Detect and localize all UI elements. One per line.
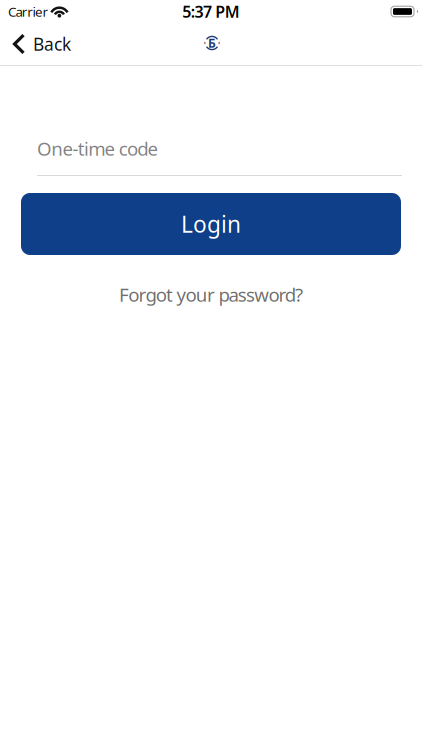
button[interactable]: One-time code	[0, 133, 422, 176]
staticText: Forgot your password?	[119, 282, 303, 307]
staticText: Carrier	[8, 3, 48, 20]
button[interactable]: Login	[21, 193, 401, 255]
staticText: Login	[181, 209, 241, 239]
button[interactable]: Forgot your password?	[111, 278, 311, 311]
staticText: 5:37 PM	[182, 1, 240, 22]
staticText: Back	[33, 32, 71, 55]
staticText: Б	[208, 35, 216, 51]
staticText: One-time code	[37, 136, 158, 161]
button[interactable]: Back	[0, 23, 81, 65]
